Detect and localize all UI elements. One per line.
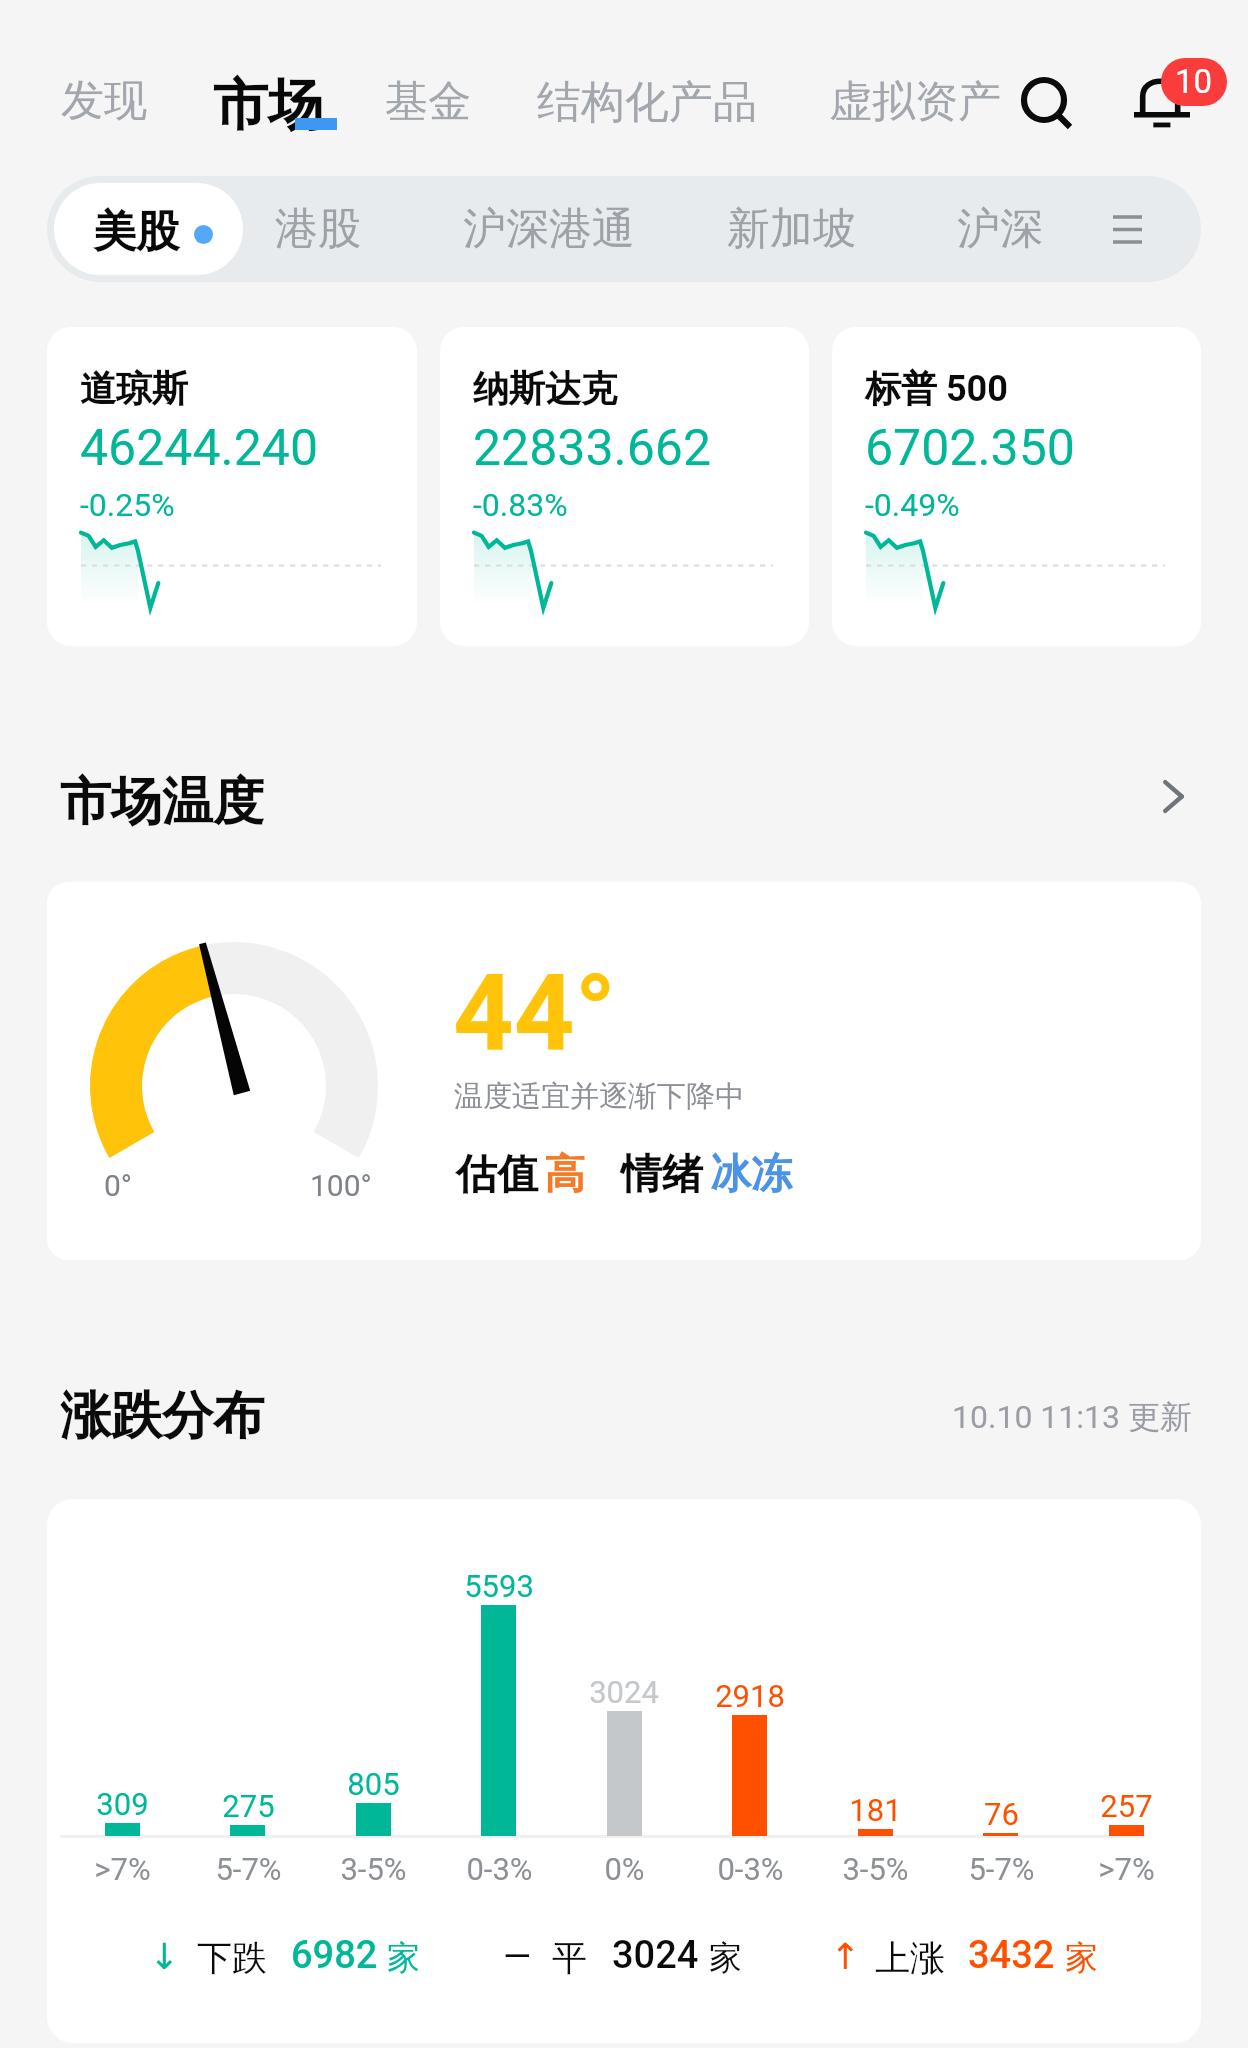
staticText: 3024 (612, 1933, 699, 1978)
staticText: 309 (96, 1786, 149, 1822)
staticText: 10.10 11:13 更新 (952, 1397, 1192, 1437)
staticText: 高 (544, 1149, 585, 1201)
staticText: 美股 (93, 205, 179, 259)
staticText: 3-5% (340, 1851, 407, 1887)
staticText: 虚拟资产 (829, 75, 1001, 129)
staticText: 275 (222, 1788, 275, 1824)
button[interactable] (491, 1923, 744, 1981)
staticText: 发现 (61, 74, 147, 128)
button[interactable]: 新加坡 (727, 183, 856, 275)
staticText: 5-7% (215, 1851, 282, 1887)
staticText: 257 (1100, 1788, 1153, 1824)
staticText: 22833.662 (473, 419, 711, 478)
staticText: 5593 (464, 1568, 534, 1604)
staticText: 3024 (589, 1674, 659, 1710)
staticText: 44° (453, 951, 616, 1075)
button[interactable]: 0° (47, 882, 1201, 1260)
staticText: >7% (1098, 1851, 1155, 1887)
button[interactable]: 沪深 (957, 183, 1043, 275)
button[interactable]: 结构化产品 (537, 84, 757, 139)
staticText: — (503, 1936, 532, 1978)
staticText: 市场温度 (60, 770, 264, 834)
button[interactable]: 基金 (385, 84, 471, 138)
staticText: 道琼斯 (80, 366, 188, 411)
staticText: -0.25% (80, 486, 175, 524)
staticText: 805 (347, 1766, 400, 1802)
staticText: 情绪 (621, 1149, 703, 1201)
staticText: 结构化产品 (537, 75, 757, 130)
staticText: >7% (94, 1851, 151, 1887)
staticText: 涨跌分布 (60, 1384, 264, 1448)
button[interactable] (818, 1923, 1100, 1981)
staticText: 5-7% (968, 1851, 1035, 1887)
staticText: ↓ (149, 1936, 180, 1978)
staticText: 3432 (968, 1933, 1055, 1978)
button[interactable]: More markets (1088, 190, 1166, 268)
staticText: 10 (1175, 62, 1213, 101)
staticText: 估值 (456, 1149, 538, 1201)
staticText: 2918 (715, 1678, 785, 1714)
staticText: 上涨 (875, 1936, 945, 1980)
staticText: 6702.350 (865, 419, 1075, 478)
staticText: 46244.240 (80, 419, 318, 478)
staticText: 0-3% (466, 1851, 533, 1887)
staticText: 下跌 (197, 1936, 267, 1980)
button[interactable]: More (1133, 764, 1213, 844)
button[interactable]: 沪深港通 (463, 183, 635, 275)
button[interactable]: 市场温度 (60, 766, 264, 830)
staticText: 100° (310, 1168, 372, 1203)
staticText: -0.83% (473, 486, 568, 524)
button[interactable] (137, 1923, 422, 1981)
staticText: 沪深港通 (463, 202, 635, 256)
staticText: 0° (104, 1168, 133, 1203)
staticText: 平 (552, 1936, 587, 1980)
staticText: 市场 (213, 71, 323, 140)
button[interactable]: 涨跌分布 (60, 1382, 264, 1446)
button[interactable]: 发现 (61, 83, 147, 137)
staticText: 0% (604, 1851, 645, 1887)
button[interactable]: 市场 (213, 82, 323, 151)
staticText: 76 (984, 1796, 1019, 1832)
button[interactable]: 道琼斯 (47, 327, 417, 646)
staticText: 家 (387, 1937, 420, 1979)
staticText: 家 (709, 1937, 742, 1979)
button[interactable]: Notifications (1114, 42, 1224, 152)
staticText: 沪深 (957, 202, 1043, 256)
staticText: 家 (1065, 1937, 1098, 1979)
staticText: 冰冻 (710, 1149, 792, 1201)
staticText: ↑ (830, 1936, 861, 1978)
button[interactable]: 纳斯达克 (440, 327, 809, 646)
staticText: 0-3% (717, 1851, 784, 1887)
staticText: 纳斯达克 (473, 366, 617, 411)
staticText: 6982 (291, 1933, 378, 1978)
staticText: 港股 (275, 202, 361, 256)
button[interactable]: Search (1011, 68, 1083, 140)
staticText: 基金 (385, 75, 471, 129)
button[interactable]: 虚拟资产 (829, 84, 1001, 138)
button[interactable]: 港股 (275, 183, 361, 275)
staticText: 3-5% (842, 1851, 909, 1887)
button[interactable]: 标普 500 (832, 327, 1201, 646)
staticText: 标普 500 (865, 366, 1008, 411)
button[interactable]: 美股 (54, 183, 243, 275)
staticText: 181 (849, 1792, 902, 1828)
staticText: 温度适宜并逐渐下降中 (454, 1078, 744, 1115)
staticText: 新加坡 (727, 202, 856, 256)
staticText: -0.49% (865, 486, 960, 524)
